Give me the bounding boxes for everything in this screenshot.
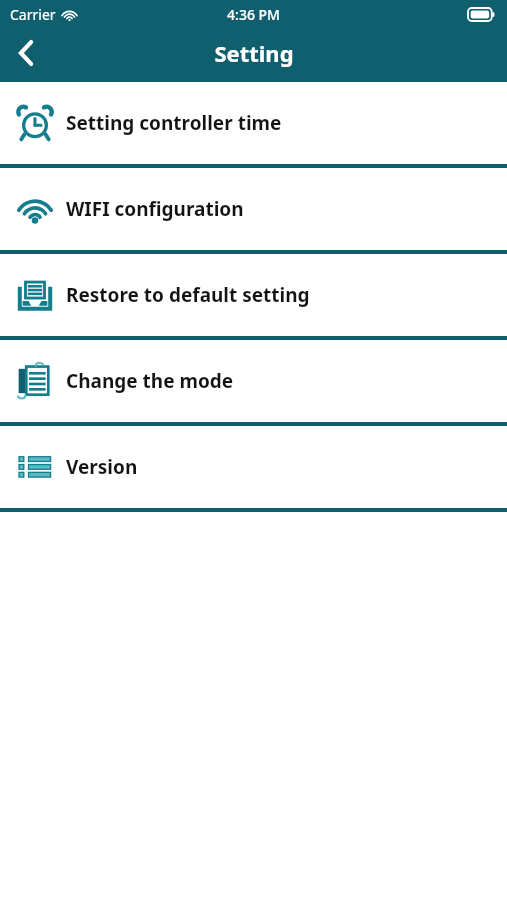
- button[interactable]: Back: [0, 28, 52, 78]
- staticText: WIFI configuration: [66, 196, 244, 222]
- staticText: Setting: [214, 38, 294, 68]
- staticText: Version: [66, 454, 138, 480]
- button[interactable]: WIFI configuration: [0, 168, 507, 250]
- staticText: Restore to default setting: [66, 282, 310, 308]
- staticText: Setting controller time: [66, 110, 282, 136]
- button[interactable]: Change the mode: [0, 340, 507, 422]
- staticText: Change the mode: [66, 368, 234, 394]
- button[interactable]: Restore to default setting: [0, 254, 507, 336]
- button[interactable]: Setting controller time: [0, 82, 507, 164]
- staticText: 4:36 PM: [227, 5, 280, 24]
- button[interactable]: Version: [0, 426, 507, 508]
- staticText: Carrier: [10, 5, 56, 24]
